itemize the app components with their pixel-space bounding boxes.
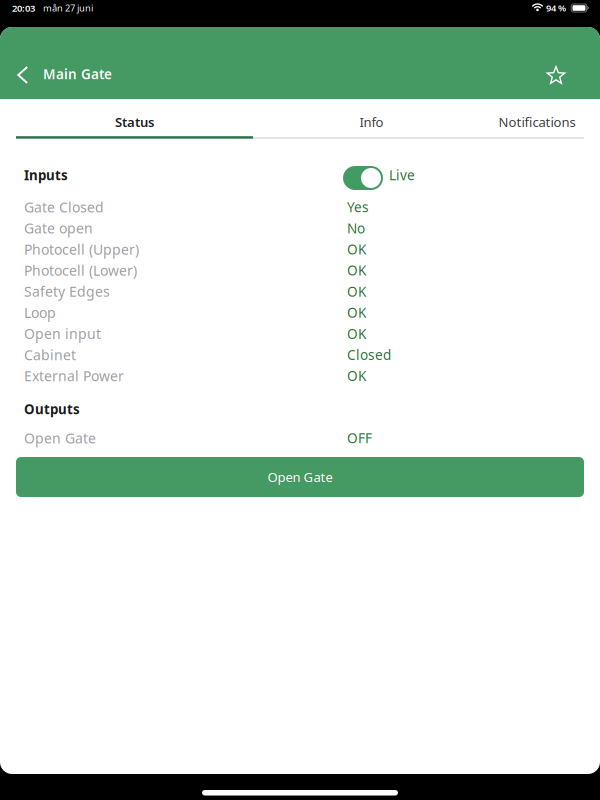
button[interactable]: Notifications xyxy=(490,108,584,136)
button[interactable]: Live updates xyxy=(343,166,384,190)
staticText: Cabinet xyxy=(24,345,76,364)
staticText: Open Gate xyxy=(267,468,332,486)
staticText: Open Gate xyxy=(24,428,96,448)
staticText: OK xyxy=(347,303,366,322)
button[interactable]: Add to favourites xyxy=(534,50,578,102)
staticText: OK xyxy=(347,261,366,279)
staticText: OK xyxy=(347,366,366,385)
staticText: Info xyxy=(359,113,383,131)
staticText: Live xyxy=(389,166,415,184)
staticText: OK xyxy=(347,324,366,343)
staticText: 94 % xyxy=(546,2,566,14)
staticText: Gate Closed xyxy=(24,197,104,217)
staticText: Outputs xyxy=(24,400,80,418)
staticText: Photocell (Lower) xyxy=(24,261,137,280)
staticText: OK xyxy=(347,282,366,301)
staticText: OFF xyxy=(347,429,372,447)
staticText: Photocell (Upper) xyxy=(24,240,139,259)
button[interactable]: Open Gate xyxy=(16,457,584,497)
staticText: Notifications xyxy=(498,113,575,131)
staticText: Safety Edges xyxy=(24,282,110,301)
staticText: Inputs xyxy=(24,166,68,184)
staticText: No xyxy=(347,219,365,237)
button[interactable]: Status xyxy=(16,108,253,136)
button[interactable]: Back xyxy=(3,49,43,101)
staticText: 20:03 xyxy=(12,2,35,14)
staticText: Gate open xyxy=(24,219,93,238)
staticText: Main Gate xyxy=(43,65,112,83)
staticText: External Power xyxy=(24,366,124,385)
button[interactable]: Info xyxy=(253,108,490,136)
staticText: Yes xyxy=(347,198,369,216)
staticText: OK xyxy=(347,240,366,258)
staticText: Open input xyxy=(24,324,101,343)
staticText: Loop xyxy=(24,303,56,322)
staticText: Status xyxy=(115,113,154,131)
staticText: Closed xyxy=(347,345,391,364)
staticText: mån 27 juni xyxy=(43,2,93,14)
